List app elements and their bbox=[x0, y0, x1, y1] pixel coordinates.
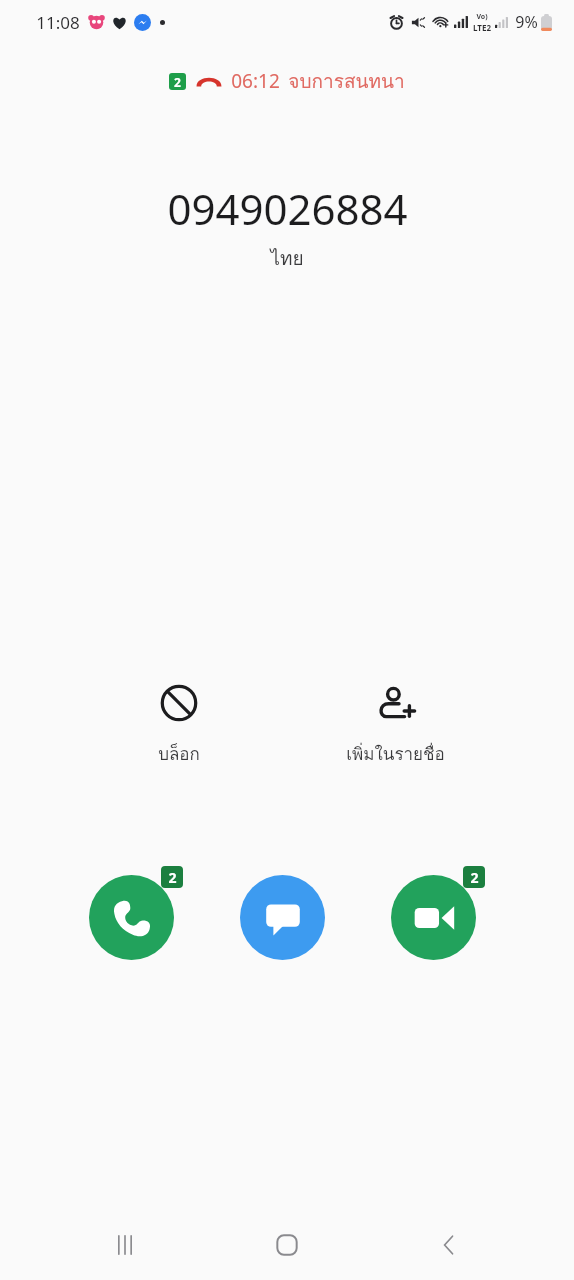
staticText: Vo) bbox=[476, 12, 488, 22]
button[interactable]: Home bbox=[250, 1210, 324, 1280]
staticText: บล็อก bbox=[158, 740, 200, 767]
staticText: เพิ่มในรายชื่อ bbox=[346, 740, 445, 767]
button[interactable]: Video call bbox=[391, 875, 476, 960]
button[interactable]: Back bbox=[412, 1210, 486, 1280]
staticText: 11:08 bbox=[36, 11, 80, 34]
staticText: 2 bbox=[470, 868, 479, 887]
button[interactable]: Recent apps bbox=[88, 1210, 162, 1280]
staticText: LTE2 bbox=[473, 22, 491, 33]
staticText: ไทย bbox=[270, 243, 304, 273]
staticText: จบการสนทนา bbox=[288, 66, 405, 96]
button[interactable]: Message bbox=[240, 875, 325, 960]
button[interactable]: Call bbox=[89, 875, 174, 960]
button[interactable]: Block bbox=[99, 676, 259, 771]
staticText: 9% bbox=[515, 11, 538, 33]
staticText: 0949026884 bbox=[167, 180, 408, 237]
staticText: 2 bbox=[168, 868, 177, 887]
staticText: 06:12 bbox=[231, 68, 280, 94]
button[interactable]: Add to contacts bbox=[315, 676, 475, 771]
staticText: 2 bbox=[174, 74, 181, 90]
